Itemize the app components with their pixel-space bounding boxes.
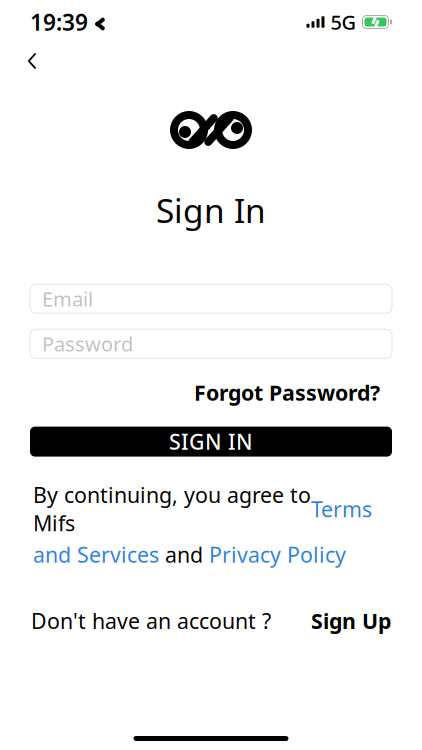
button[interactable]: Terms <box>311 495 372 523</box>
staticText: Email <box>42 285 93 312</box>
button[interactable]: and Services <box>33 540 159 569</box>
staticText: 19:39 <box>30 7 88 37</box>
staticText: and Services <box>33 540 159 569</box>
button[interactable]: SIGN IN <box>30 427 392 457</box>
staticText: Sign Up <box>311 607 391 635</box>
staticText: Don't have an account ? <box>31 607 271 635</box>
staticText: SIGN IN <box>169 427 253 456</box>
button[interactable]: Back <box>12 44 52 78</box>
button[interactable]: Sign Up <box>311 607 391 635</box>
staticText: Password <box>42 330 133 357</box>
button[interactable]: Forgot Password? <box>194 378 380 407</box>
staticText: and <box>159 540 209 569</box>
staticText: Sign In <box>156 188 266 232</box>
button[interactable]: Password <box>30 329 392 358</box>
staticText: Terms <box>311 495 372 523</box>
button[interactable]: Email <box>30 284 392 313</box>
staticText: 5G <box>330 9 356 35</box>
staticText: Forgot Password? <box>194 378 380 407</box>
staticText: Privacy Policy <box>209 540 346 569</box>
staticText: By continuing, you agree to Mifs <box>33 481 311 537</box>
button[interactable]: Privacy Policy <box>209 540 346 569</box>
